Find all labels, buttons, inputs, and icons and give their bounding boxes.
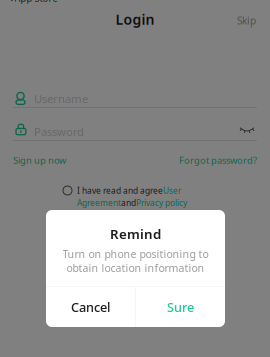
staticText: I have read and agree (77, 185, 163, 196)
staticText: Skip (237, 14, 256, 27)
staticText: Cancel (71, 299, 110, 315)
button[interactable]: Cancel (46, 287, 135, 327)
staticText: Remind (110, 225, 161, 243)
staticText: App Store (14, 0, 57, 4)
staticText: Login (115, 10, 154, 29)
staticText: and (121, 197, 136, 208)
staticText: User (163, 185, 181, 196)
staticText: Turn on phone positioning to (62, 247, 208, 261)
staticText: Password (34, 124, 84, 139)
staticText: Sure (167, 299, 194, 315)
button[interactable]: Sure (136, 287, 225, 327)
staticText: Privacy policy (136, 197, 187, 208)
button[interactable]: I have read and agree (63, 185, 187, 208)
button[interactable]: Forgot password? (179, 154, 257, 166)
staticText: obtain location information (66, 261, 204, 275)
staticText: Agreement (77, 197, 121, 208)
button[interactable]: Show password (233, 121, 260, 139)
button[interactable]: Skip (230, 9, 263, 32)
staticText: Forgot password? (179, 154, 257, 166)
button[interactable]: Sign up now (13, 154, 66, 166)
staticText: Sign up now (13, 154, 66, 166)
staticText: Username (34, 91, 88, 106)
